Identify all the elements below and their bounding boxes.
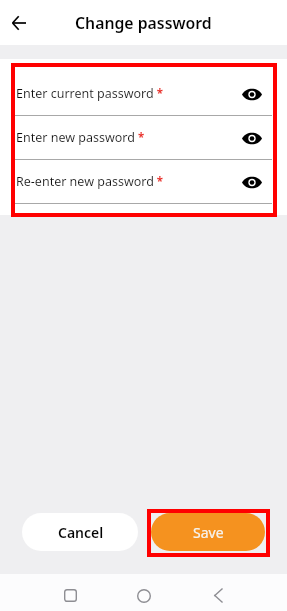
button[interactable]: Cancel xyxy=(22,513,138,551)
button[interactable]: Enter new password * xyxy=(0,116,287,159)
button[interactable]: Show password xyxy=(240,170,264,194)
button[interactable]: Save xyxy=(151,513,265,551)
staticText: Enter new password * xyxy=(16,129,145,146)
button[interactable]: Show password xyxy=(240,82,264,106)
staticText: Re-enter new password * xyxy=(16,173,164,190)
button[interactable]: Recents xyxy=(50,577,90,611)
button[interactable]: Enter current password * xyxy=(0,72,287,115)
staticText: Enter current password * xyxy=(16,85,163,102)
staticText: Save xyxy=(193,523,224,542)
staticText: Change password xyxy=(75,12,212,34)
button[interactable]: Back xyxy=(6,10,32,36)
button[interactable]: Show password xyxy=(240,126,264,150)
staticText: Cancel xyxy=(58,523,104,542)
button[interactable]: Back xyxy=(198,577,238,611)
button[interactable]: Home xyxy=(124,577,164,611)
button[interactable]: Re-enter new password * xyxy=(0,160,287,203)
